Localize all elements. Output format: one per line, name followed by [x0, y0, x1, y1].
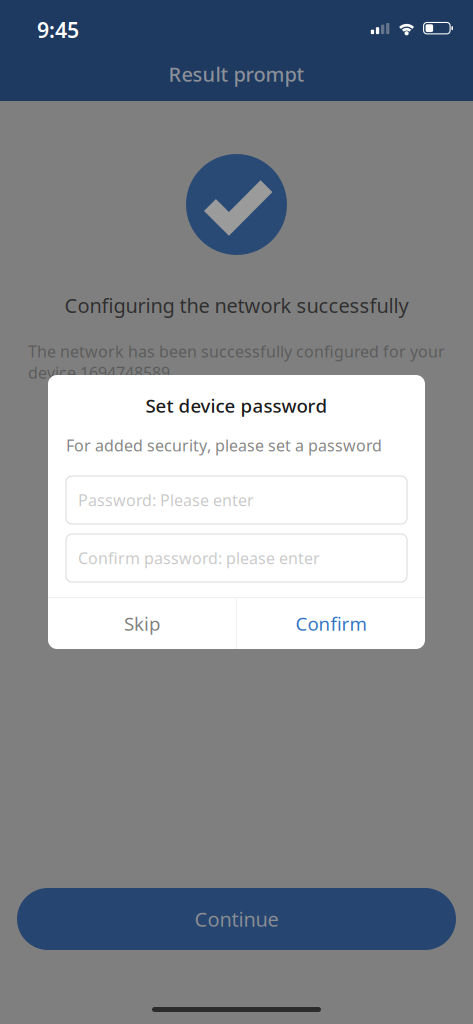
- staticText: Configuring the network successfully: [64, 292, 408, 319]
- staticText: Password: Please enter: [78, 489, 254, 511]
- staticText: 9:45: [37, 15, 79, 44]
- staticText: Continue: [194, 906, 278, 932]
- staticText: For added security, please set a passwor…: [66, 435, 382, 456]
- button[interactable]: Confirm: [237, 598, 425, 649]
- staticText: Set device password: [145, 393, 327, 418]
- button[interactable]: Continue: [17, 888, 456, 950]
- staticText: Confirm password: please enter: [78, 547, 320, 569]
- staticText: The network has been successfully config…: [28, 341, 445, 383]
- staticText: Skip: [124, 611, 160, 636]
- staticText: Confirm: [295, 611, 366, 636]
- button[interactable]: Skip: [48, 598, 236, 649]
- staticText: Result prompt: [168, 61, 304, 87]
